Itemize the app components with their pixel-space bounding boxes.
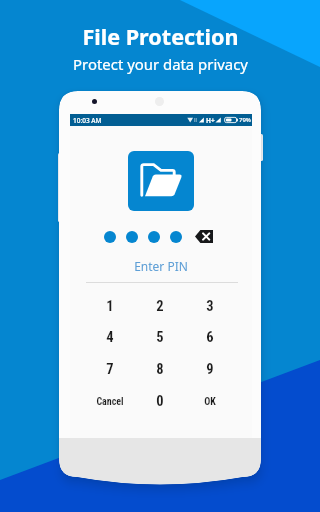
- staticText: 3: [206, 298, 214, 315]
- staticText: 7: [106, 361, 114, 378]
- button[interactable]: 9: [185, 354, 235, 385]
- button[interactable]: 7: [85, 354, 135, 385]
- staticText: 5: [156, 329, 164, 346]
- button[interactable]: 0: [135, 386, 185, 417]
- staticText: 4: [106, 329, 114, 346]
- button[interactable]: 3: [185, 291, 235, 322]
- staticText: Protect your data privacy: [73, 54, 248, 74]
- staticText: 79%: [239, 116, 251, 124]
- button[interactable]: 4: [85, 322, 135, 353]
- staticText: 6: [206, 329, 214, 346]
- button[interactable]: OK: [185, 386, 235, 417]
- button[interactable]: 8: [135, 354, 185, 385]
- button[interactable]: 2: [135, 291, 185, 322]
- staticText: Enter PIN: [134, 258, 188, 274]
- staticText: H+: [206, 116, 215, 125]
- staticText: 8: [156, 361, 164, 378]
- button[interactable]: 5: [135, 322, 185, 353]
- button[interactable]: Backspace: [195, 230, 213, 243]
- button[interactable]: 6: [185, 322, 235, 353]
- staticText: 10:03 AM: [73, 116, 102, 125]
- button[interactable]: 1: [85, 291, 135, 322]
- staticText: 0: [156, 393, 164, 410]
- staticText: 9: [206, 361, 214, 378]
- staticText: Cancel: [96, 396, 124, 408]
- staticText: 2: [156, 298, 164, 315]
- button[interactable]: Cancel: [85, 386, 135, 417]
- staticText: OK: [204, 396, 216, 408]
- staticText: 1: [106, 298, 114, 315]
- staticText: File Protection: [82, 22, 239, 51]
